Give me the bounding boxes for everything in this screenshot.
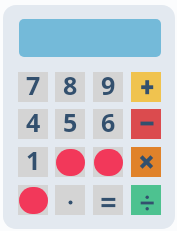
button[interactable]: = (93, 185, 123, 215)
button[interactable]: 5 (55, 109, 85, 139)
button[interactable]: 7 (18, 72, 48, 102)
button[interactable]: o (93, 147, 123, 177)
staticText: 6 (101, 105, 116, 135)
button[interactable]: 1 (18, 147, 48, 177)
staticText: 8 (63, 68, 78, 98)
button[interactable]: 4 (18, 109, 48, 139)
button[interactable]: o (18, 185, 48, 215)
button[interactable]: 9 (93, 72, 123, 102)
button[interactable]: o (55, 147, 85, 177)
button[interactable] (19, 19, 161, 57)
button[interactable]: . (55, 185, 85, 215)
staticText: 9 (101, 68, 116, 98)
button[interactable]: 8 (55, 72, 85, 102)
staticText: 7 (26, 68, 41, 98)
button[interactable]: / (131, 185, 161, 215)
staticText: 4 (26, 105, 41, 135)
button[interactable]: 6 (93, 109, 123, 139)
staticText: 1 (26, 143, 41, 173)
button[interactable]: - (131, 109, 161, 139)
staticText: 5 (63, 105, 78, 135)
button[interactable]: + (131, 72, 161, 102)
button[interactable]: x (131, 147, 161, 177)
